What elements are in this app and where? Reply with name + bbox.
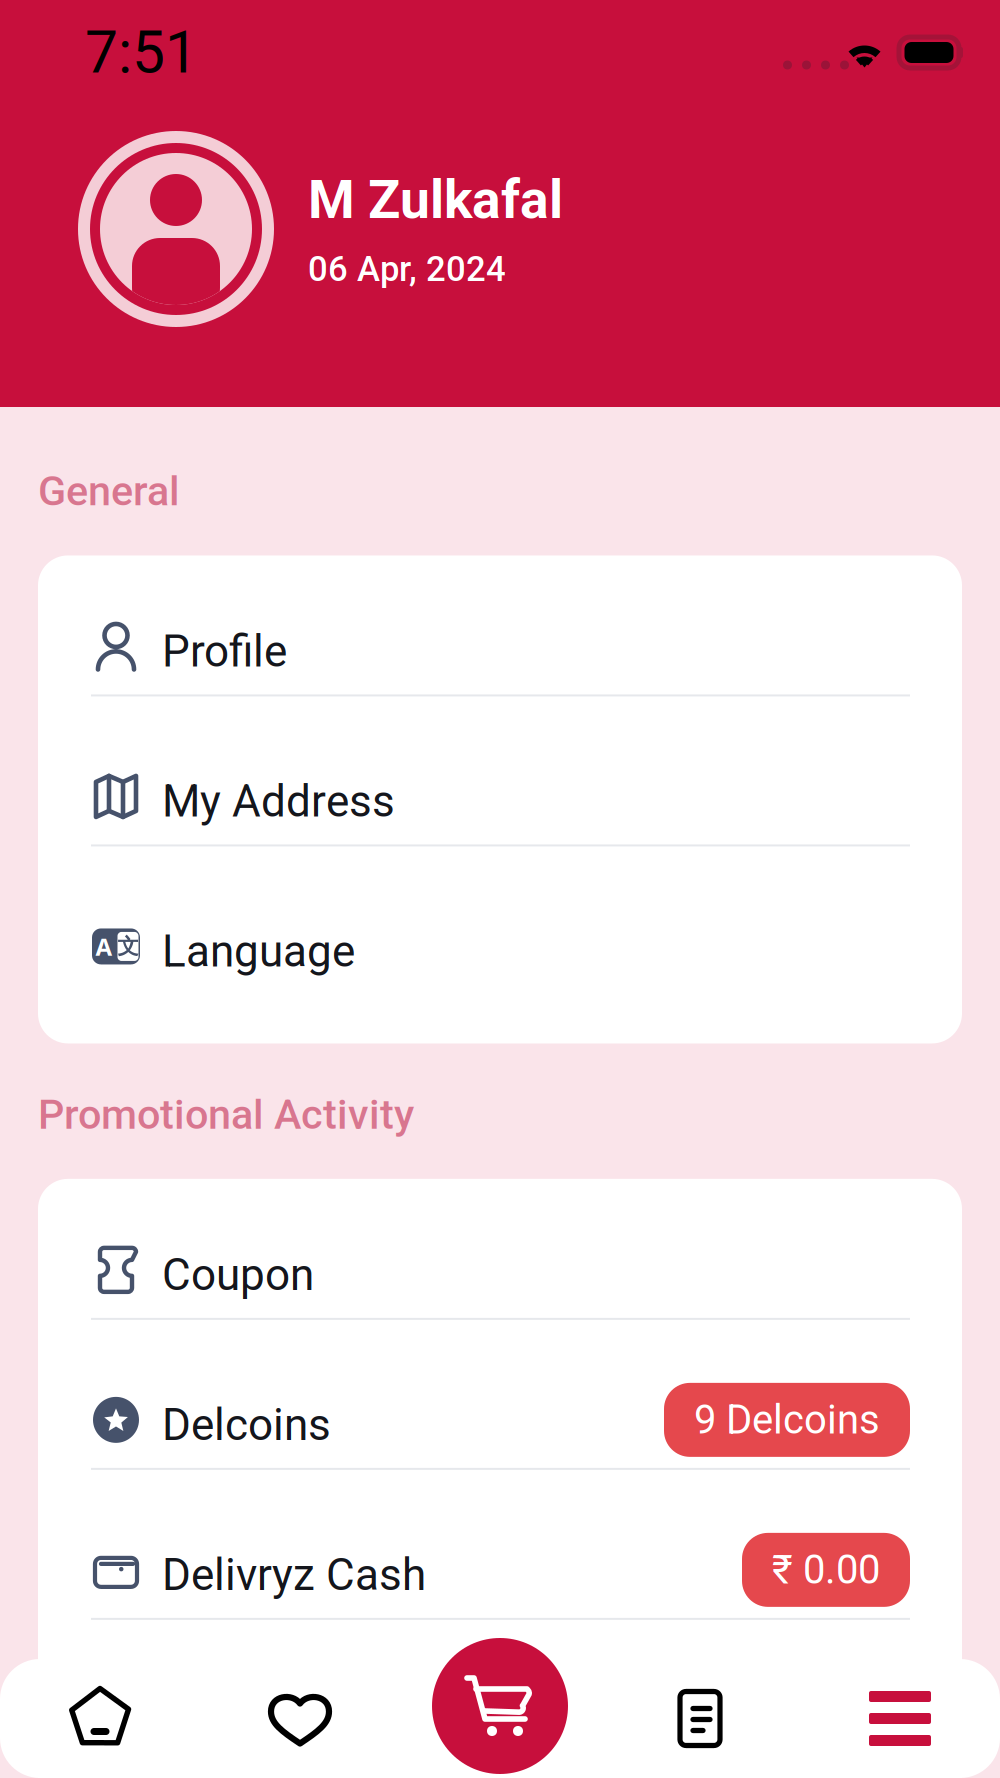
staticText: ₹ 0.00: [772, 1546, 880, 1593]
staticText: Delcoins: [162, 1399, 331, 1451]
button[interactable]: My Address: [38, 723, 962, 873]
staticText: 文: [117, 933, 138, 959]
button[interactable]: Profile: [38, 573, 962, 723]
button[interactable]: Menu: [800, 1659, 1000, 1778]
staticText: My Address: [162, 776, 395, 827]
button[interactable]: Home: [0, 1659, 200, 1778]
button[interactable]: Coupon: [38, 1197, 962, 1347]
staticText: M Zulkafal: [308, 168, 563, 231]
staticText: Promotional Activity: [38, 1090, 414, 1139]
button[interactable]: Refer & Earn: [38, 1647, 962, 1778]
button[interactable]: Cart: [419, 1625, 581, 1778]
staticText: A: [95, 930, 112, 962]
staticText: 9 Delcoins: [694, 1396, 880, 1443]
button[interactable]: Orders: [600, 1659, 800, 1778]
button[interactable]: Favourites: [200, 1659, 400, 1778]
staticText: Delivryz Cash: [162, 1549, 426, 1601]
staticText: Refer & Earn: [162, 1699, 402, 1751]
staticText: 06 Apr, 2024: [308, 249, 506, 289]
button[interactable]: Delivryz Cash: [38, 1497, 962, 1647]
button[interactable]: Delcoins: [38, 1347, 962, 1497]
button[interactable]: A: [38, 873, 962, 1023]
staticText: Profile: [162, 626, 287, 677]
staticText: Coupon: [162, 1249, 314, 1301]
staticText: 7:51: [85, 18, 198, 87]
staticText: Language: [162, 926, 355, 977]
staticText: General: [38, 467, 180, 515]
